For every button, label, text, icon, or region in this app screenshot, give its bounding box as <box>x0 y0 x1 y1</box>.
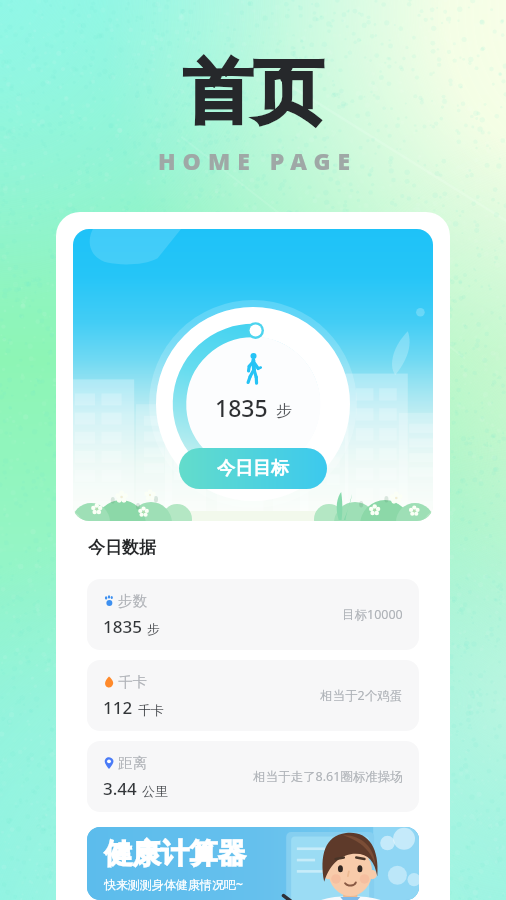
staticText: 公里 <box>142 783 168 799</box>
staticText: 千卡 <box>118 673 147 691</box>
staticText: 3.44 <box>103 777 137 800</box>
staticText: 112 <box>103 696 133 719</box>
staticText: HOME PAGE <box>158 145 358 176</box>
staticText: 健康计算器 <box>104 836 246 871</box>
staticText: 相当于走了8.61圈标准操场 <box>253 768 403 785</box>
staticText: 快来测测身体健康情况吧~ <box>104 876 243 892</box>
staticText: 今日目标 <box>217 457 289 480</box>
staticText: 目标10000 <box>342 606 403 623</box>
button[interactable]: 步数 <box>87 579 419 650</box>
staticText: 步数 <box>118 592 147 610</box>
staticText: 距离 <box>118 754 147 772</box>
button[interactable]: 今日目标 <box>179 448 327 489</box>
staticText: 步 <box>147 621 160 637</box>
button[interactable]: 距离 <box>87 741 419 812</box>
button[interactable]: 千卡 <box>87 660 419 731</box>
staticText: 首页 <box>183 49 323 137</box>
staticText: 今日数据 <box>88 537 156 558</box>
staticText: 步 <box>276 401 292 421</box>
button[interactable]: 健康计算器 <box>87 827 419 900</box>
staticText: 1835 <box>215 392 268 423</box>
staticText: 相当于2个鸡蛋 <box>320 687 403 704</box>
staticText: 1835 <box>103 615 142 638</box>
staticText: 千卡 <box>138 702 164 718</box>
